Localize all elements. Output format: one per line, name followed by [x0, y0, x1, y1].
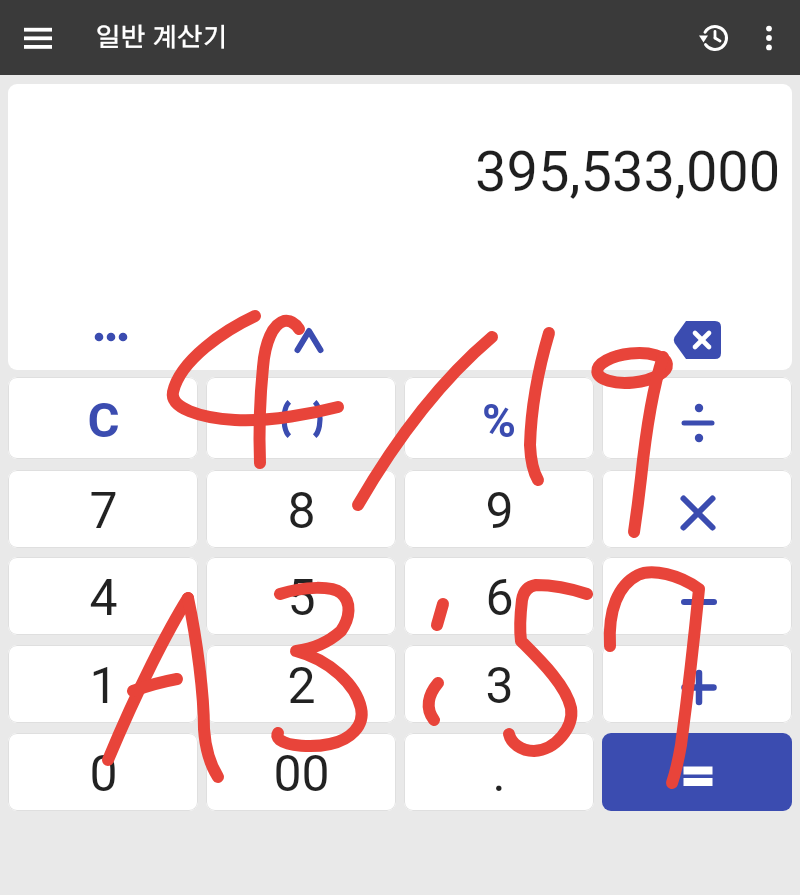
button[interactable]: 0 — [8, 733, 198, 811]
button[interactable]: 4 — [8, 557, 198, 635]
staticText: C — [87, 392, 120, 449]
button[interactable]: 7 — [8, 470, 198, 548]
button[interactable]: 9 — [404, 470, 594, 548]
staticText: 일반 계산기 — [95, 25, 228, 51]
button[interactable]: 6 — [404, 557, 594, 635]
button[interactable]: 8 — [206, 470, 396, 548]
button[interactable] — [206, 377, 396, 459]
button[interactable]: 1 — [8, 645, 198, 723]
button[interactable]: 00 — [206, 733, 396, 811]
button[interactable] — [87, 322, 135, 354]
staticText: 5 — [287, 569, 316, 628]
button[interactable]: 3 — [404, 645, 594, 723]
button[interactable] — [669, 317, 725, 363]
staticText: 2 — [287, 657, 316, 716]
staticText: 1 — [89, 657, 118, 716]
staticText: 3 — [485, 657, 514, 716]
button[interactable] — [602, 733, 792, 811]
button[interactable] — [602, 557, 792, 635]
staticText: 00 — [273, 745, 330, 804]
button[interactable] — [750, 19, 788, 57]
button[interactable] — [602, 377, 792, 459]
staticText: 395,533,000 — [475, 139, 781, 205]
staticText: . — [492, 745, 506, 804]
button[interactable]: 5 — [206, 557, 396, 635]
button[interactable]: % — [404, 377, 594, 459]
button[interactable]: C — [8, 377, 198, 459]
button[interactable]: 2 — [206, 645, 396, 723]
staticText: 8 — [287, 482, 316, 541]
button[interactable]: . — [404, 733, 594, 811]
button[interactable] — [291, 324, 327, 356]
button[interactable] — [602, 645, 792, 723]
staticText: 4 — [89, 569, 118, 628]
staticText: % — [482, 394, 516, 448]
staticText: 9 — [485, 482, 514, 541]
staticText: 7 — [89, 482, 118, 541]
staticText: 6 — [485, 569, 514, 628]
button[interactable] — [694, 18, 734, 58]
button[interactable] — [14, 14, 62, 62]
staticText: 0 — [89, 745, 118, 804]
button[interactable] — [602, 470, 792, 548]
